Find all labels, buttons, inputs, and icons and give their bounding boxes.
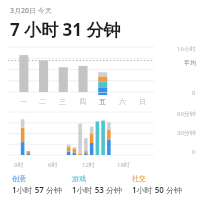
staticText: 日 <box>139 97 146 106</box>
staticText: 1小时 57 分钟 <box>12 184 62 195</box>
staticText: 平均 <box>184 59 196 67</box>
button[interactable]: 60分钟 <box>0 109 200 169</box>
staticText: 六 <box>119 97 126 106</box>
staticText: 18时 <box>117 161 130 169</box>
button[interactable]: 游戏 <box>72 174 132 195</box>
staticText: 游戏 <box>72 174 86 183</box>
staticText: 30分钟 <box>177 129 196 137</box>
staticText: 五 <box>99 97 106 106</box>
staticText: 0时 <box>14 161 24 169</box>
staticText: 三 <box>59 97 66 106</box>
staticText: 12时 <box>82 161 95 169</box>
staticText: 3月20日 今天 <box>10 6 52 16</box>
staticText: 创意 <box>12 174 26 183</box>
staticText: 1小时 53 分钟 <box>72 184 122 195</box>
staticText: 16小时 <box>177 45 196 53</box>
staticText: 0 <box>192 89 196 97</box>
staticText: 1小时 50 分钟 <box>132 184 182 195</box>
staticText: 60分钟 <box>177 110 196 118</box>
staticText: 7 小时 31 分钟 <box>10 18 121 41</box>
staticText: 0 <box>192 148 196 156</box>
staticText: 二 <box>39 97 46 106</box>
staticText: 6时 <box>48 161 58 169</box>
staticText: 四 <box>79 97 86 106</box>
button[interactable]: 社交 <box>132 174 192 195</box>
button[interactable]: 16小时 <box>0 45 200 107</box>
staticText: 一 <box>20 97 27 106</box>
staticText: 社交 <box>132 174 146 183</box>
button[interactable]: 创意 <box>12 174 72 195</box>
